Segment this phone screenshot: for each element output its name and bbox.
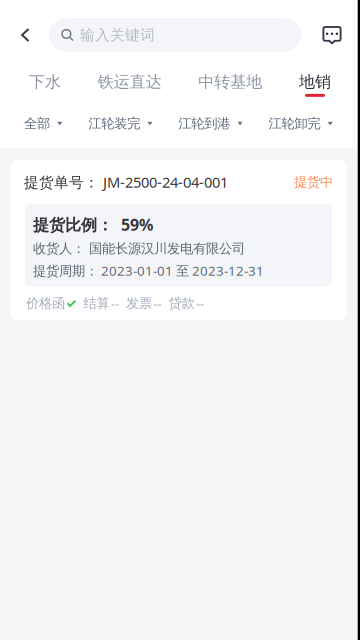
button[interactable]: 下水 [29,70,61,99]
button[interactable]: 提货单号： JM-2500-24-04-001 [10,160,347,320]
button[interactable]: 江轮装完 [88,111,153,135]
button[interactable]: 铁运直达 [98,70,162,99]
staticText: 提货单号： JM-2500-24-04-001 [24,172,228,192]
button[interactable]: 江轮到港 [178,111,243,135]
staticText: -- [196,294,204,312]
staticText: 提货中 [294,174,333,190]
staticText: 全部 [24,115,50,132]
staticText: -- [111,294,119,312]
staticText: 贷款 [168,295,194,311]
staticText: 江轮卸完 [268,115,320,132]
staticText: 输入关键词 [80,26,155,44]
staticText: 中转基地 [198,72,262,92]
staticText: 江轮到港 [178,115,230,132]
button[interactable]: Messages [316,13,348,57]
button[interactable]: 江轮卸完 [268,111,333,135]
staticText: 江轮装完 [88,115,140,132]
button[interactable]: 地销 [299,70,331,99]
staticText: 下水 [29,72,61,92]
staticText: -- [153,294,161,312]
staticText: 提货周期： 2023-01-01 至 2023-12-31 [33,262,264,279]
staticText: 提货比例： 59% [33,214,153,235]
button[interactable]: 中转基地 [198,70,262,99]
staticText: 结算 [83,295,109,311]
staticText: 价格函 [26,295,65,311]
button[interactable]: 全部 [24,111,63,135]
staticText: 地销 [299,72,331,92]
staticText: 发票 [126,295,152,311]
button[interactable]: Back [10,13,49,57]
staticText: 铁运直达 [98,72,162,92]
staticText: 收货人： 国能长源汉川发电有限公司 [33,240,245,257]
